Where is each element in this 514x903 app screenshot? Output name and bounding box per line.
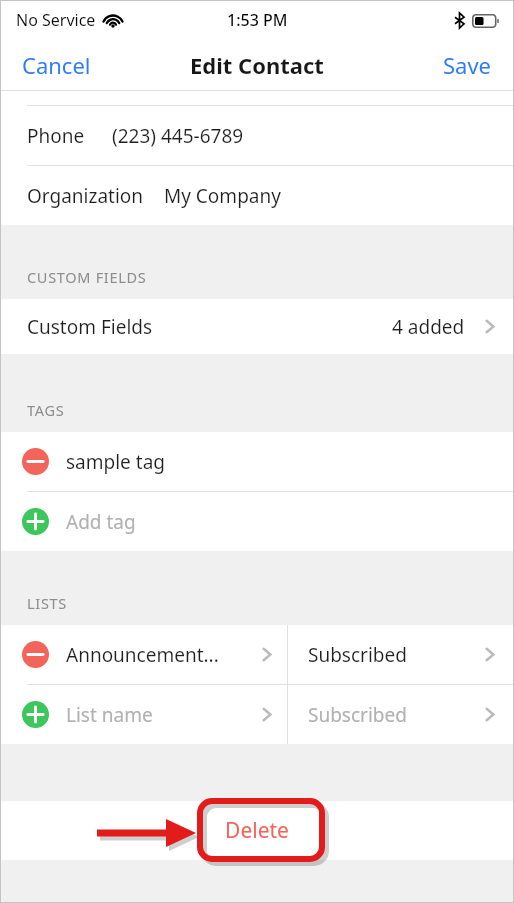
staticText: Edit Contact (190, 50, 324, 80)
staticText: Cancel (22, 50, 91, 80)
button[interactable]: List name (0, 685, 287, 744)
button[interactable]: Delete (0, 801, 514, 860)
button[interactable]: Cancel (0, 40, 113, 90)
staticText: 4 added (392, 314, 465, 340)
button[interactable]: Phone (0, 106, 514, 165)
staticText: Subscribed (308, 642, 407, 668)
staticText: 1:53 PM (227, 9, 288, 31)
button[interactable]: Add tag (0, 492, 514, 551)
button[interactable]: Announcement... (0, 625, 287, 684)
staticText: TAGS (27, 400, 65, 420)
staticText: sample tag (66, 449, 165, 475)
staticText: My Company (164, 183, 281, 209)
button[interactable]: Save (421, 40, 514, 90)
staticText: Announcement... (66, 642, 219, 668)
staticText: CUSTOM FIELDS (27, 267, 147, 287)
staticText: No Service (16, 9, 96, 31)
button[interactable]: sample tag (0, 432, 514, 491)
staticText: Add tag (66, 509, 136, 535)
staticText: Phone (27, 123, 85, 149)
staticText: Save (443, 50, 492, 80)
staticText: List name (66, 702, 153, 728)
button[interactable]: Subscribed (288, 685, 514, 744)
button[interactable]: Custom Fields (0, 299, 514, 354)
staticText: LISTS (27, 593, 67, 613)
staticText: Custom Fields (27, 314, 153, 340)
button[interactable]: Subscribed (288, 625, 514, 684)
staticText: Organization (27, 183, 144, 209)
staticText: (223) 445-6789 (112, 123, 244, 149)
staticText: Delete (225, 816, 289, 845)
staticText: Subscribed (308, 702, 407, 728)
button[interactable]: Organization (0, 166, 514, 225)
